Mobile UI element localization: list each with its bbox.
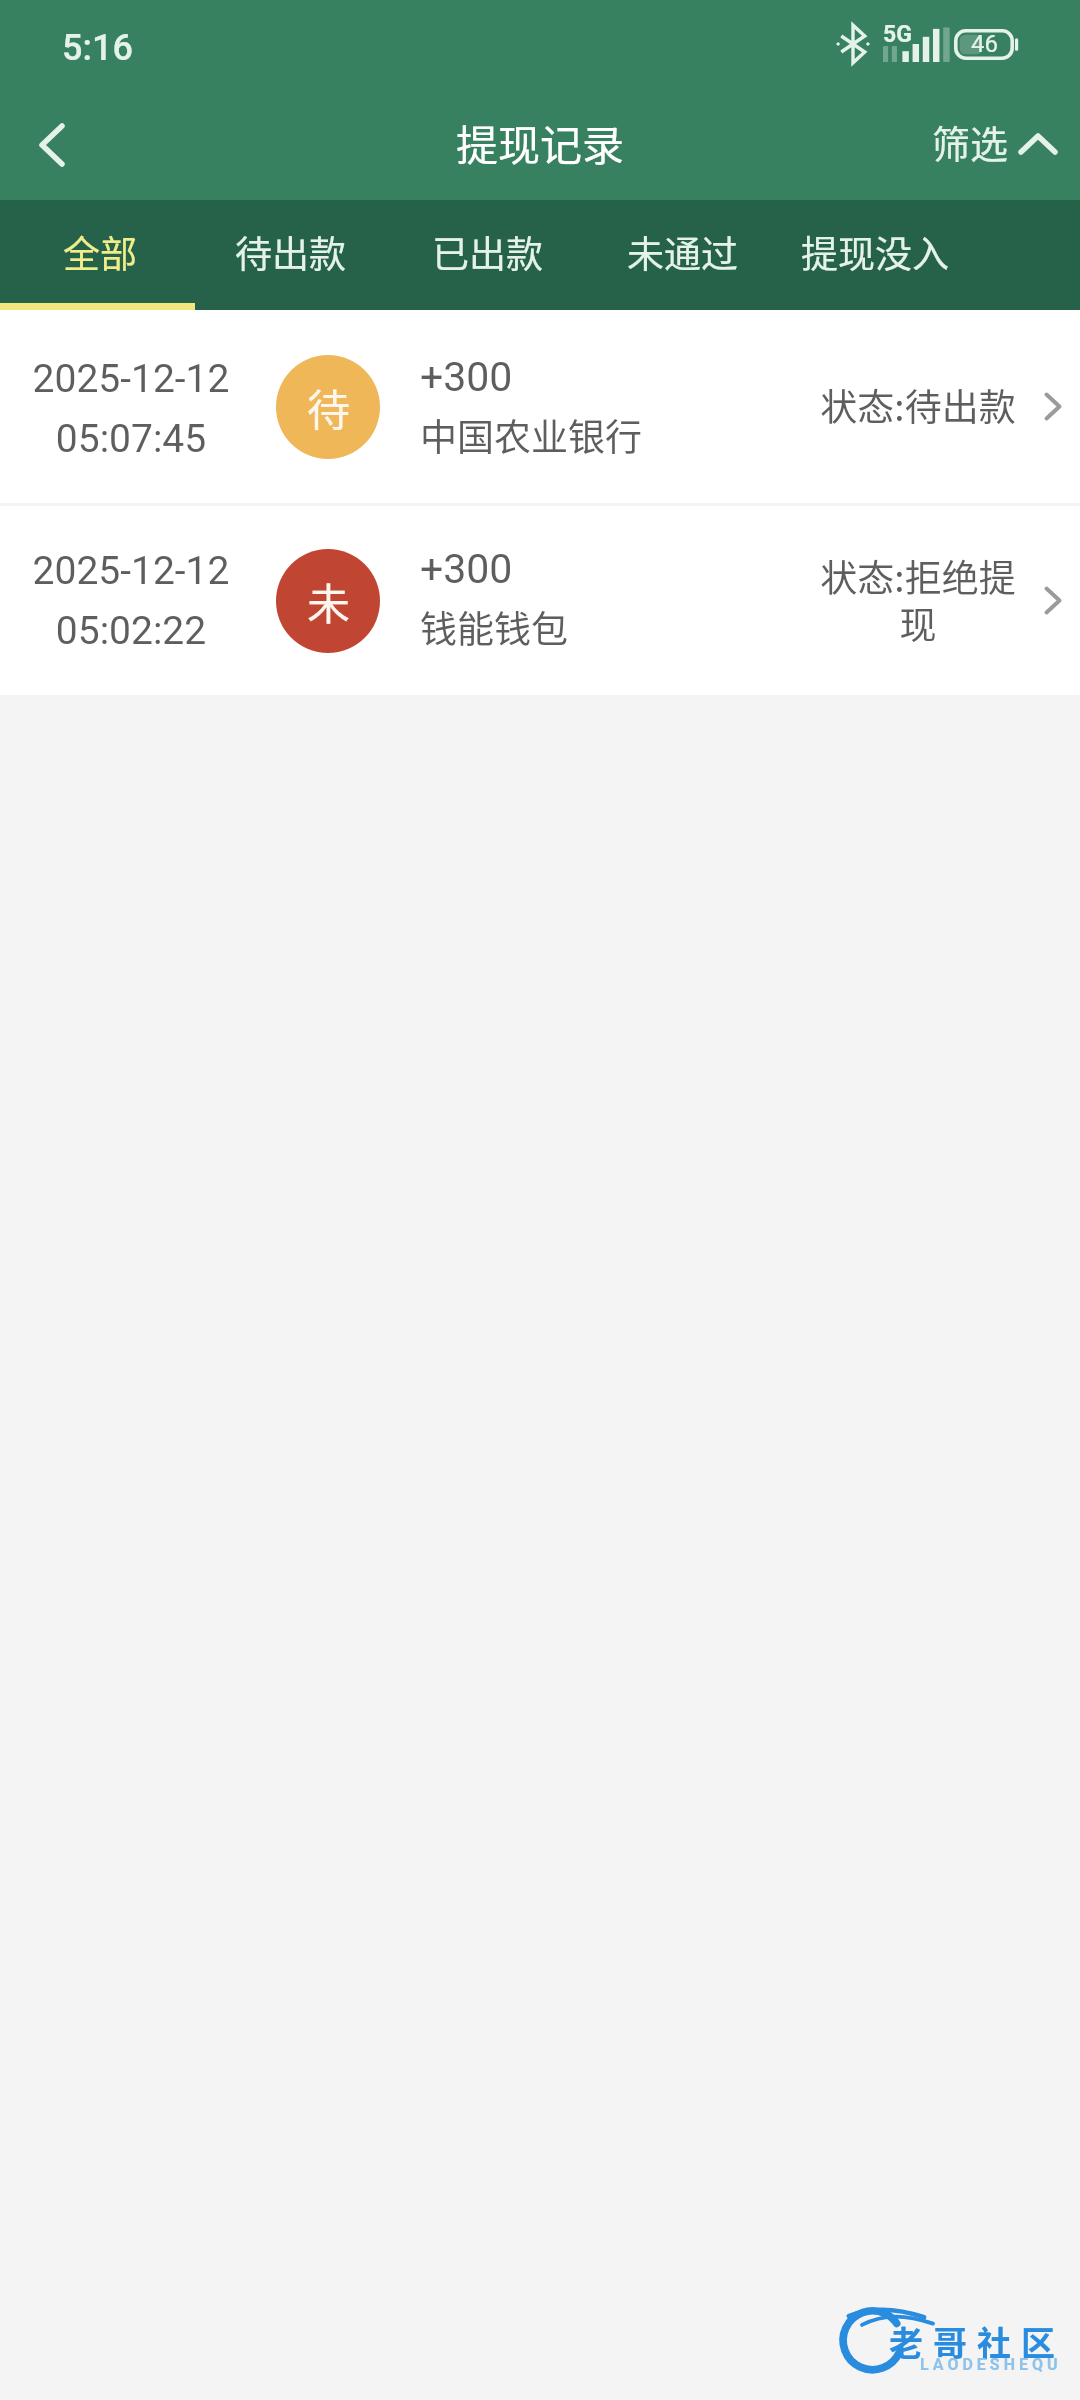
button[interactable]: 未通过 [587, 197, 777, 307]
button[interactable]: 待出款 [195, 197, 385, 307]
staticText: 待出款 [235, 225, 346, 279]
staticText: +300 钱能钱包 [420, 535, 568, 655]
staticText: 未 [307, 570, 350, 632]
button[interactable]: Back [0, 95, 106, 195]
staticText: 状态:拒绝提现 [818, 554, 1018, 648]
staticText: 提现记录 [456, 112, 625, 173]
staticText: 未通过 [627, 225, 738, 279]
staticText: 提现没入 [801, 225, 949, 279]
button[interactable]: 已出款 [392, 197, 582, 307]
staticText: 筛选 [932, 114, 1009, 169]
staticText: 5G [883, 21, 912, 48]
staticText: 5:16 [62, 27, 133, 69]
button[interactable]: 筛选 [908, 92, 1080, 192]
button[interactable]: 2025-12-12 05:07:45 [0, 310, 1080, 503]
staticText: 状态:待出款 [820, 383, 1016, 430]
staticText: 46 [971, 30, 998, 58]
staticText: +300 中国农业银行 [420, 343, 642, 463]
staticText: 老哥社区 [889, 2317, 1065, 2366]
button[interactable]: 2025-12-12 05:02:22 [0, 506, 1080, 695]
staticText: 已出款 [432, 225, 543, 279]
staticText: LAODESHEQU [920, 2355, 1062, 2374]
staticText: 待 [307, 376, 350, 438]
button[interactable]: 全部 [20, 197, 180, 307]
button[interactable]: 提现没入 [780, 197, 970, 307]
staticText: 2025-12-12 05:07:45 [31, 344, 231, 464]
staticText: 2025-12-12 05:02:22 [31, 536, 231, 656]
staticText: 全部 [63, 225, 137, 279]
